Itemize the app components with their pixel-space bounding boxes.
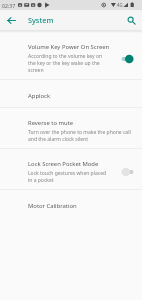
staticText: Applock (28, 92, 51, 100)
staticText: Motor Calibration (28, 202, 77, 210)
button[interactable]: Lock Screen Pocket Mode (0, 149, 142, 189)
button[interactable]: Reverse to mute (0, 108, 142, 148)
staticText: 02:37 (2, 2, 16, 9)
staticText: Turn over the phone to make the phone ca… (28, 129, 134, 143)
staticText: System (28, 15, 54, 25)
staticText: Lock Screen Pocket Mode (28, 160, 99, 168)
staticText: 4G (117, 2, 123, 8)
staticText: Volume Key Power On Screen (28, 43, 110, 51)
button[interactable]: Search (120, 10, 142, 30)
staticText: Lock touch gestures when placed in a poc… (28, 170, 111, 184)
button[interactable]: Back (0, 10, 22, 30)
button[interactable]: Switch on (121, 52, 134, 66)
staticText: Reverse to mute (28, 119, 74, 127)
button[interactable]: Volume Key Power On Screen (0, 33, 142, 79)
button[interactable]: Switch off (121, 165, 134, 179)
staticText: According to the volume key on the key o… (28, 53, 111, 74)
button[interactable]: Motor Calibration (0, 190, 142, 217)
button[interactable]: Applock (0, 80, 142, 107)
